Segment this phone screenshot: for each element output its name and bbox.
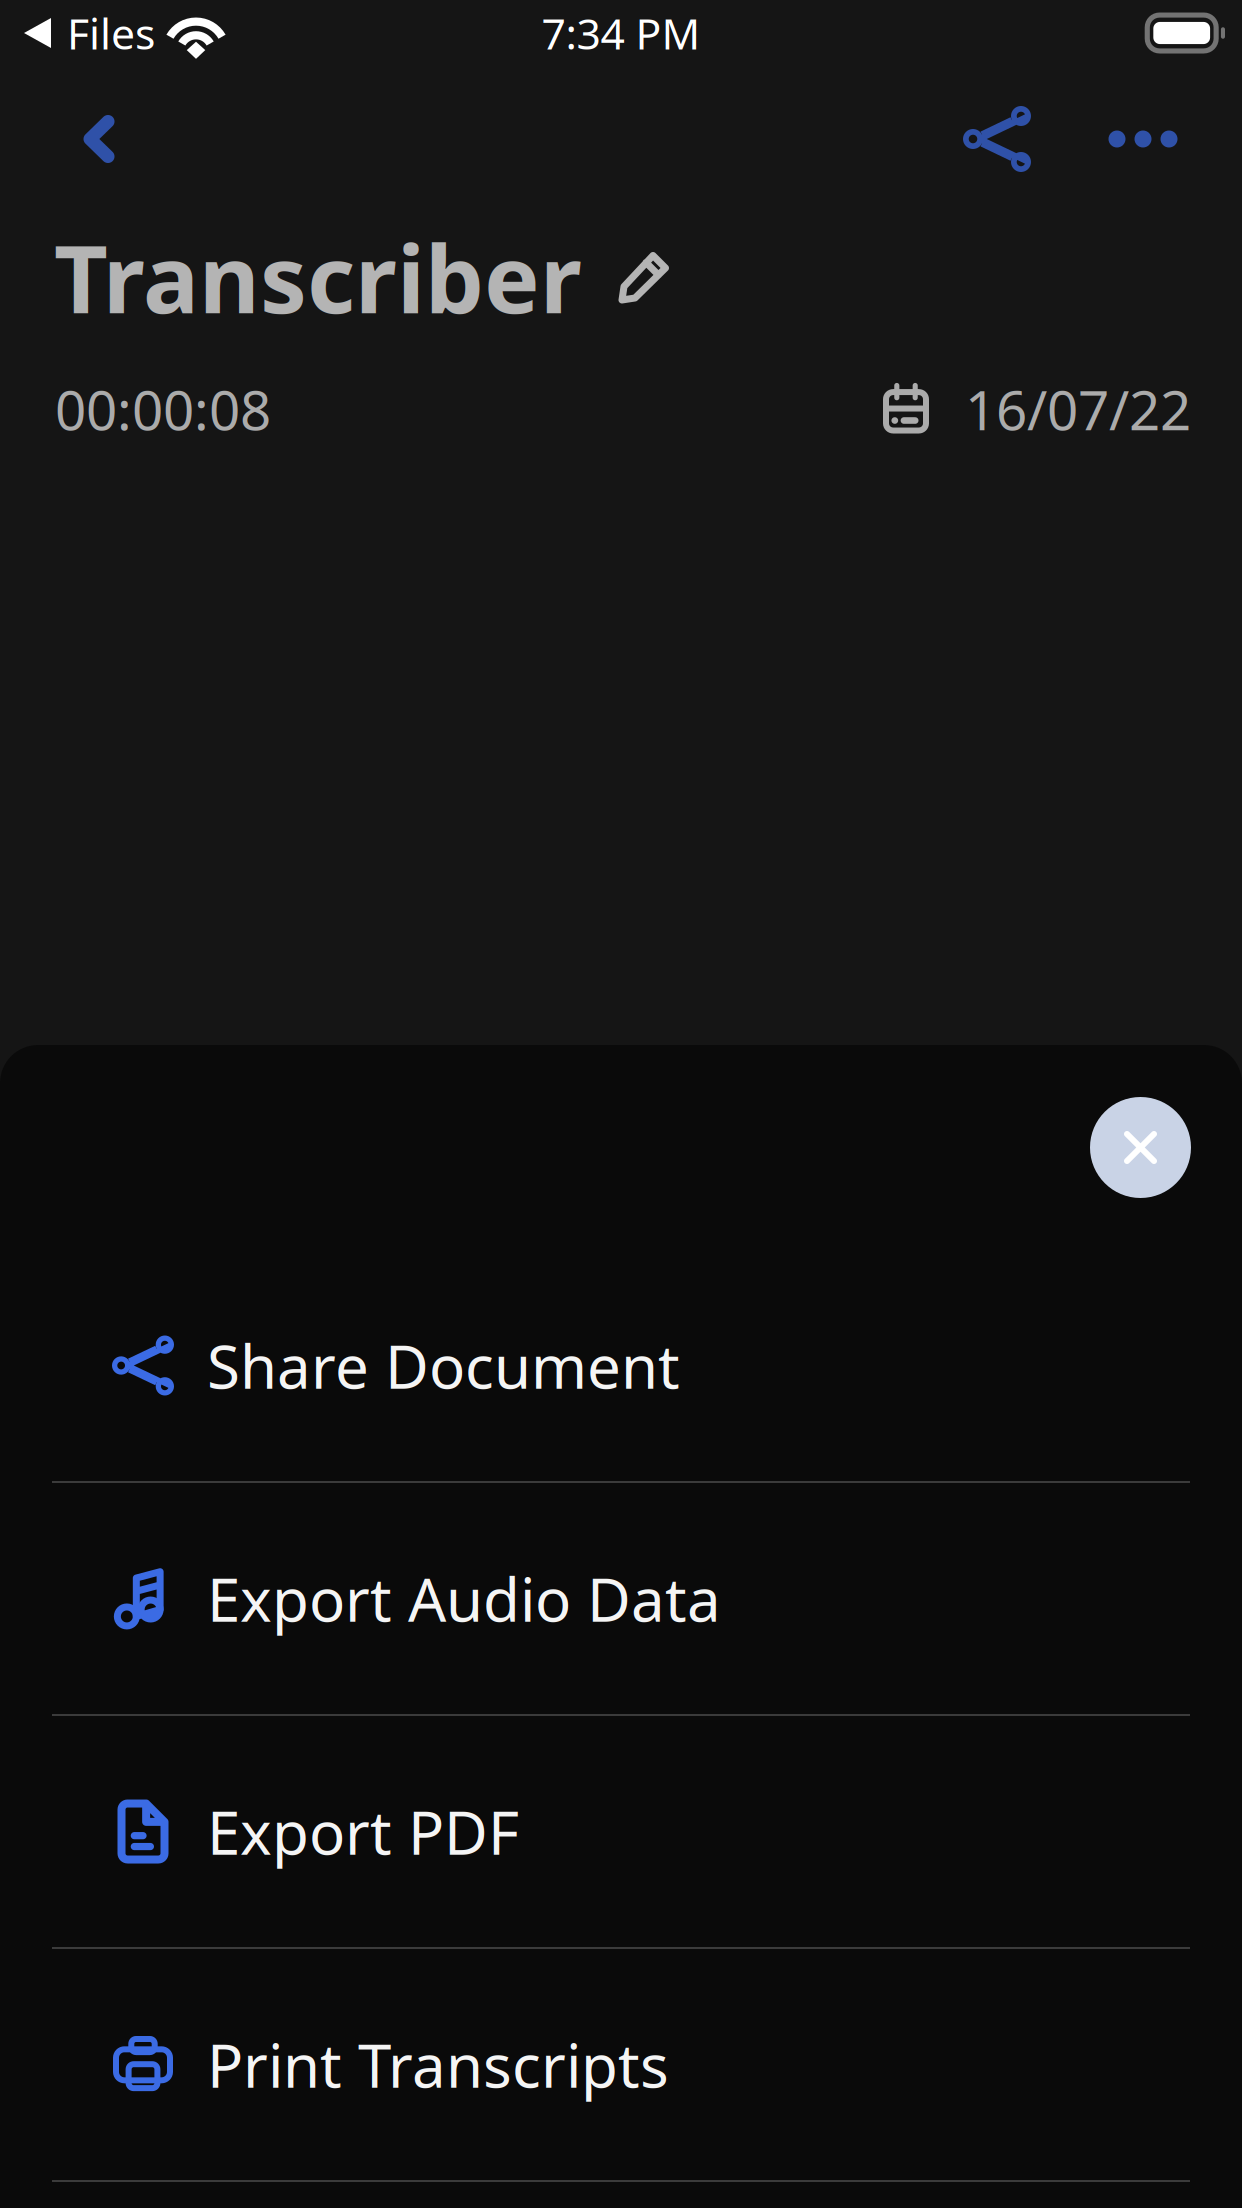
- staticText: Transcriber: [54, 215, 582, 339]
- button[interactable]: Export PDF: [0, 1716, 1242, 1947]
- button[interactable]: Share: [942, 87, 1052, 191]
- button[interactable]: Close: [1090, 1097, 1191, 1198]
- button[interactable]: More options: [1088, 87, 1198, 191]
- staticText: 00:00:08: [55, 373, 271, 445]
- button[interactable]: Back: [44, 87, 154, 191]
- staticText: 7:34 PM: [541, 5, 700, 61]
- staticText: Files: [67, 5, 155, 61]
- button[interactable]: Print Transcripts: [0, 1949, 1242, 2180]
- staticText: Export PDF: [207, 1792, 519, 1871]
- staticText: Print Transcripts: [207, 2025, 669, 2104]
- staticText: Export Audio Data: [207, 1559, 721, 1638]
- button[interactable]: Rename recording: [595, 228, 693, 326]
- staticText: Share Document: [207, 1326, 680, 1405]
- button[interactable]: Export Audio Data: [0, 1483, 1242, 1714]
- button[interactable]: Share Document: [0, 1250, 1242, 1481]
- staticText: 16/07/22: [965, 373, 1191, 445]
